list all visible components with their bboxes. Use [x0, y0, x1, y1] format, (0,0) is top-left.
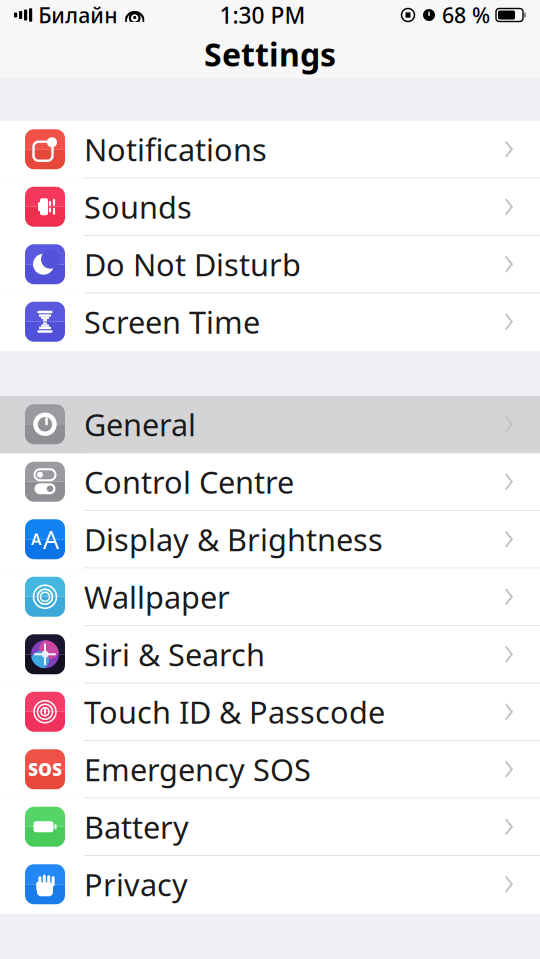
staticText: General: [84, 404, 196, 445]
staticText: Билайн: [38, 1, 117, 29]
staticText: A: [31, 529, 42, 550]
staticText: SOS: [28, 758, 62, 781]
staticText: A: [43, 522, 59, 556]
button[interactable]: Wallpaper: [0, 568, 540, 626]
button[interactable]: Privacy: [0, 856, 540, 913]
button[interactable]: Screen Time: [0, 293, 540, 351]
button[interactable]: Notifications: [0, 121, 540, 178]
staticText: 1:30 PM: [220, 0, 306, 30]
staticText: Battery: [84, 806, 189, 847]
staticText: Display & Brightness: [84, 519, 383, 560]
staticText: Control Centre: [84, 461, 294, 502]
staticText: Screen Time: [84, 301, 260, 342]
staticText: Touch ID & Passcode: [84, 691, 385, 732]
button[interactable]: Siri & Search: [0, 626, 540, 683]
staticText: Siri & Search: [84, 634, 265, 675]
staticText: Sounds: [84, 186, 192, 227]
staticText: Settings: [204, 33, 336, 75]
button[interactable]: General: [0, 396, 540, 453]
button[interactable]: A: [0, 511, 540, 568]
staticText: Do Not Disturb: [84, 244, 301, 285]
button[interactable]: Battery: [0, 798, 540, 856]
staticText: Emergency SOS: [84, 749, 311, 790]
staticText: Notifications: [84, 129, 267, 170]
button[interactable]: Sounds: [0, 178, 540, 236]
button[interactable]: Touch ID & Passcode: [0, 683, 540, 741]
staticText: Privacy: [84, 864, 188, 905]
button[interactable]: Control Centre: [0, 453, 540, 511]
staticText: 68 %: [442, 1, 490, 29]
button[interactable]: SOS: [0, 741, 540, 798]
button[interactable]: Do Not Disturb: [0, 236, 540, 293]
staticText: Wallpaper: [84, 576, 230, 617]
